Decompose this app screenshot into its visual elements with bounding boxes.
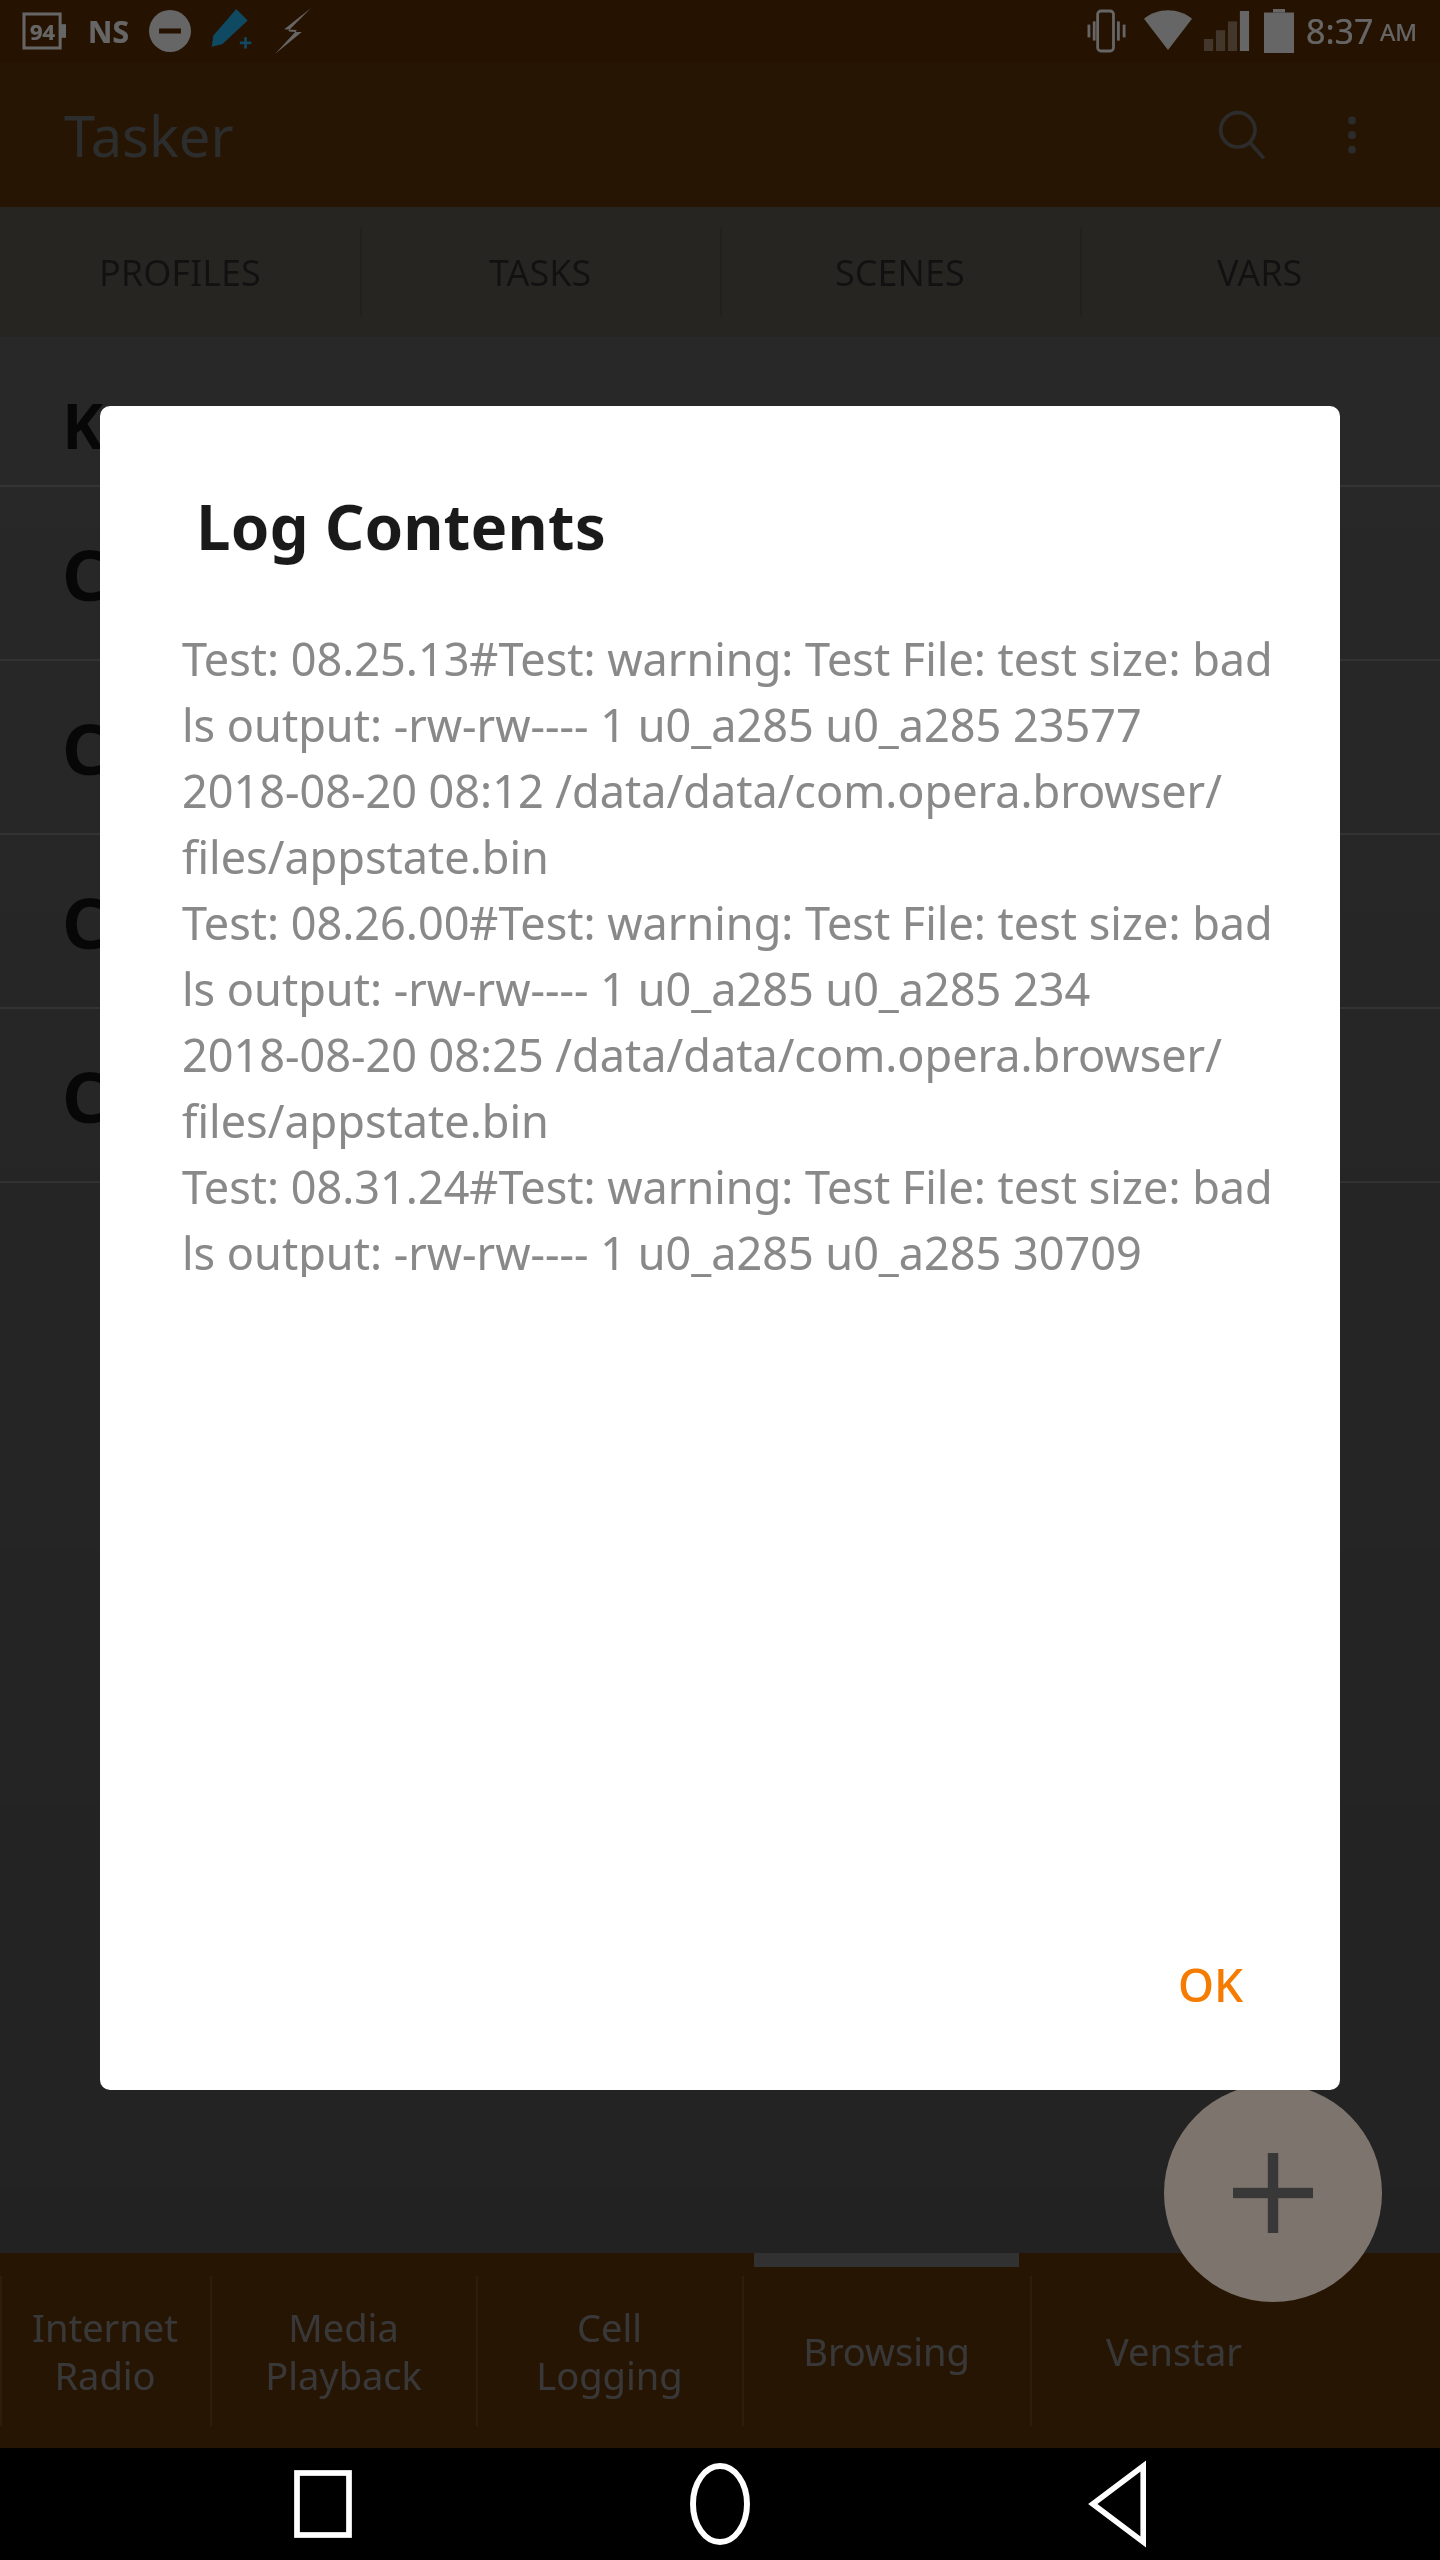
staticText: C bbox=[62, 700, 107, 795]
button[interactable]: Internet Radio bbox=[0, 2253, 210, 2448]
button[interactable]: More options bbox=[1304, 87, 1400, 183]
button[interactable]: SCENES bbox=[720, 207, 1080, 337]
button[interactable]: Browsing bbox=[742, 2253, 1030, 2448]
staticText: Media Playback bbox=[265, 2301, 422, 2401]
button[interactable]: Media Playback bbox=[210, 2253, 476, 2448]
button[interactable]: PROFILES bbox=[0, 207, 360, 337]
staticText: K bbox=[62, 383, 104, 467]
staticText: VARS bbox=[1217, 248, 1303, 297]
staticText: Log Contents bbox=[196, 484, 606, 568]
button[interactable]: C bbox=[0, 1009, 1440, 1183]
button[interactable]: K bbox=[0, 365, 1440, 487]
staticText: 8:37 bbox=[1306, 8, 1374, 54]
staticText: Browsing bbox=[803, 2325, 970, 2377]
staticText: C bbox=[62, 874, 107, 969]
staticText: Venstar bbox=[1106, 2325, 1242, 2377]
button[interactable]: Search bbox=[1194, 87, 1290, 183]
button[interactable]: Add bbox=[1164, 2084, 1382, 2302]
staticText: NS bbox=[88, 11, 129, 52]
button[interactable]: C bbox=[0, 661, 1440, 835]
staticText: OK bbox=[1178, 1953, 1244, 2016]
button[interactable]: Venstar bbox=[1030, 2253, 1318, 2448]
button[interactable]: Recent apps bbox=[248, 2448, 398, 2560]
staticText: SCENES bbox=[835, 248, 965, 297]
staticText: TASKS bbox=[489, 248, 592, 297]
staticText: Test: 08.25.13#Test: warning: Test File:… bbox=[182, 628, 1274, 1277]
button[interactable]: Cell Logging bbox=[476, 2253, 742, 2448]
button[interactable]: C bbox=[0, 487, 1440, 661]
staticText: Tasker bbox=[64, 97, 234, 173]
button[interactable]: OK bbox=[1134, 1927, 1288, 2042]
staticText: Internet Radio bbox=[32, 2301, 178, 2401]
staticText: AM bbox=[1380, 15, 1418, 48]
button[interactable]: Back bbox=[1043, 2448, 1193, 2560]
staticText: Cell Logging bbox=[536, 2301, 683, 2401]
staticText: 94 bbox=[30, 16, 56, 46]
staticText: C bbox=[62, 526, 107, 621]
button[interactable]: Home bbox=[645, 2448, 795, 2560]
button[interactable]: C bbox=[0, 835, 1440, 1009]
staticText: C bbox=[62, 1048, 107, 1143]
staticText: PROFILES bbox=[99, 248, 261, 297]
